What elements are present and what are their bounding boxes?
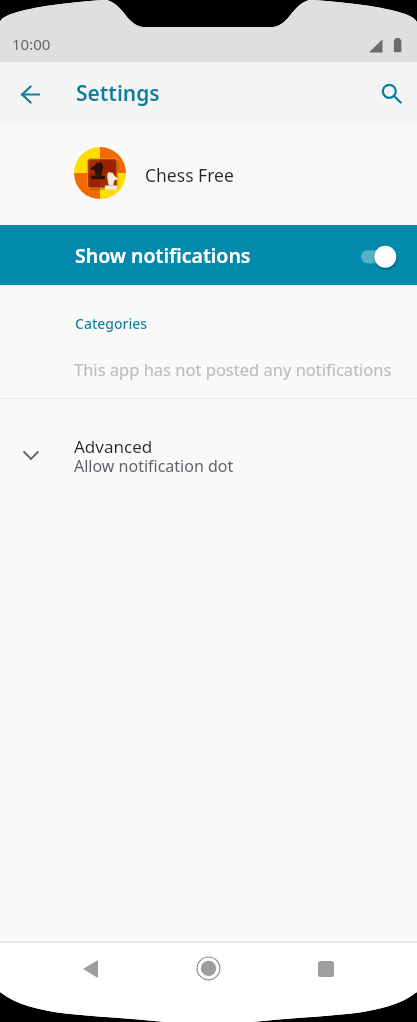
staticText: Chess Free	[145, 163, 234, 187]
button[interactable]: Back	[6, 70, 54, 118]
button[interactable]: Show notifications	[0, 225, 417, 285]
staticText: Advanced	[74, 435, 153, 458]
button[interactable]: Recent apps	[298, 945, 354, 993]
button[interactable]: Back	[62, 945, 118, 993]
button[interactable]: Home	[180, 945, 236, 993]
button[interactable]: Search	[368, 70, 416, 118]
staticText: This app has not posted any notification…	[74, 358, 392, 380]
staticText: Allow notification dot	[74, 455, 234, 477]
staticText: Categories	[75, 314, 148, 333]
staticText: Settings	[76, 79, 160, 108]
button[interactable]: Advanced	[0, 399, 417, 477]
staticText: Show notifications	[75, 242, 251, 269]
staticText: 10:00	[12, 34, 51, 54]
